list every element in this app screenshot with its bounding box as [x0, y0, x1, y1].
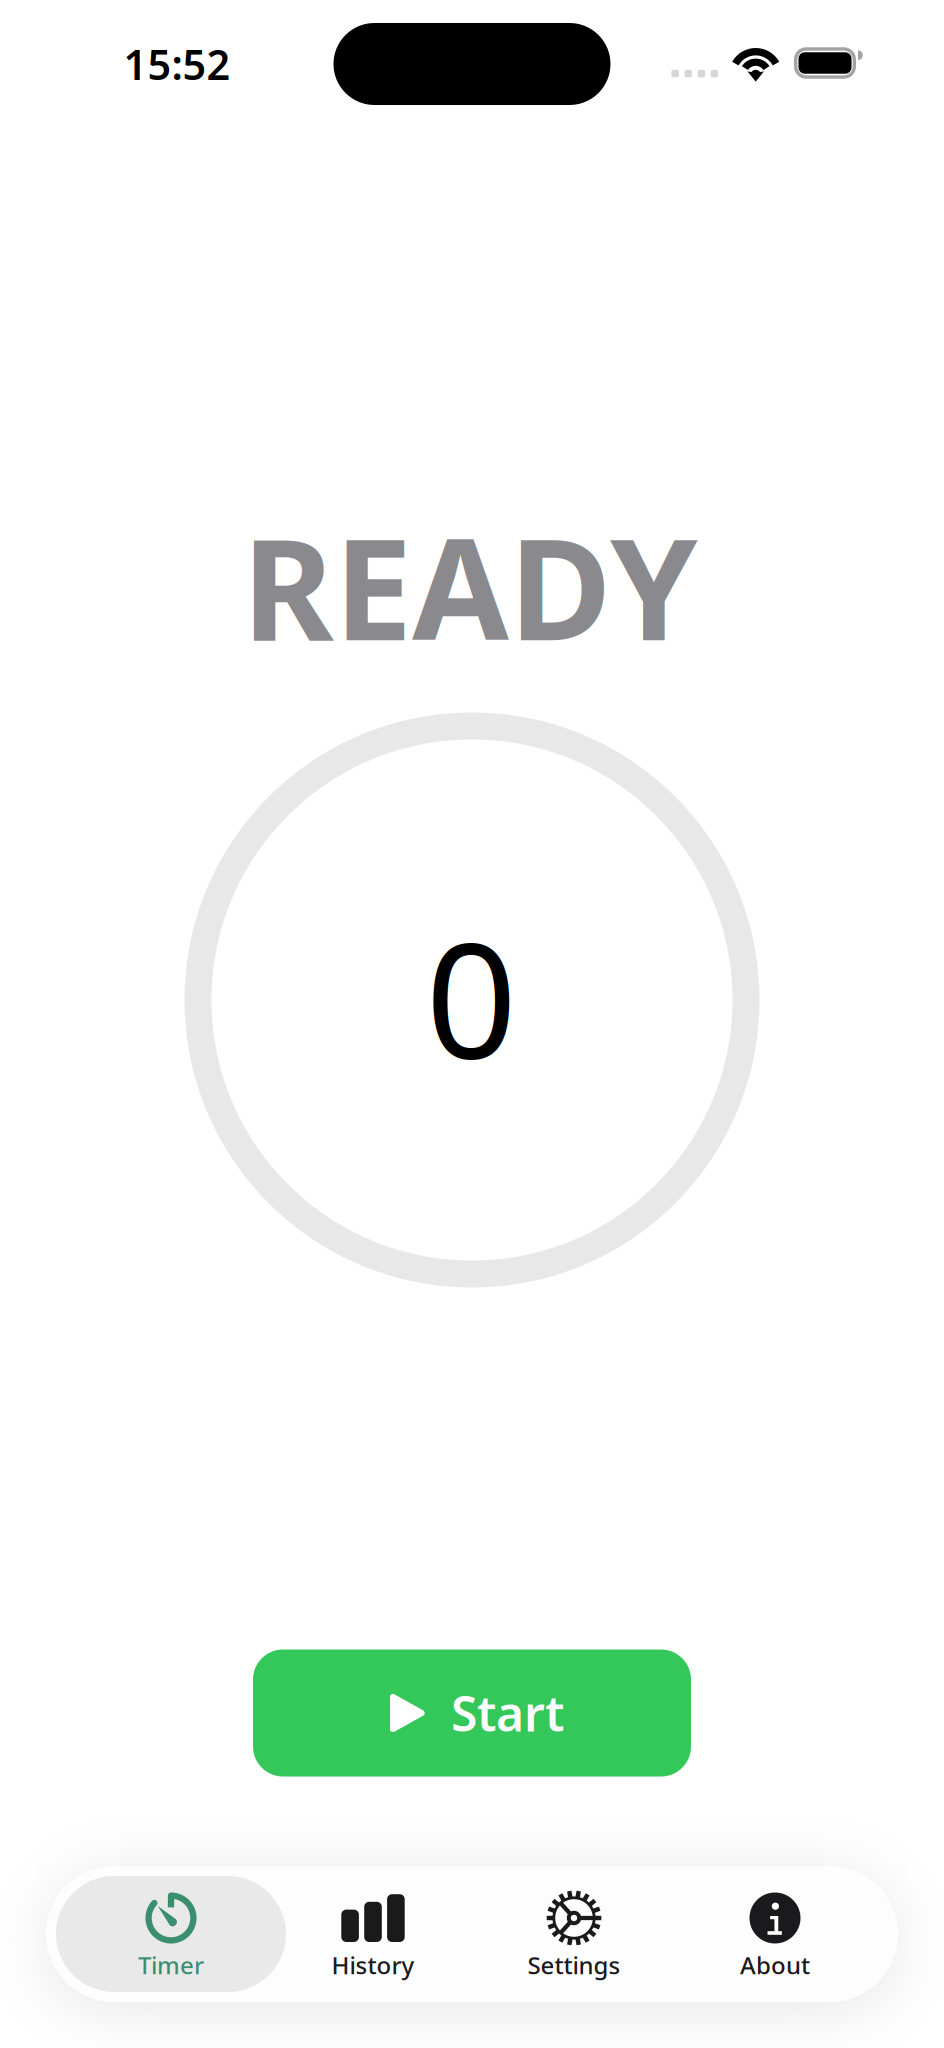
staticText: READY: [242, 493, 698, 679]
staticText: Settings: [527, 1949, 620, 1981]
staticText: History: [331, 1949, 414, 1981]
staticText: Timer: [138, 1949, 204, 1981]
staticText: Start: [451, 1681, 564, 1745]
button[interactable]: History: [258, 1876, 488, 1992]
button[interactable]: Start: [253, 1649, 691, 1776]
button[interactable]: Timer: [56, 1876, 286, 1992]
staticText: About: [740, 1949, 810, 1981]
button[interactable]: About: [660, 1876, 890, 1992]
staticText: 15:52: [123, 37, 230, 91]
staticText: 0: [425, 890, 517, 1102]
button[interactable]: Settings: [459, 1876, 689, 1992]
